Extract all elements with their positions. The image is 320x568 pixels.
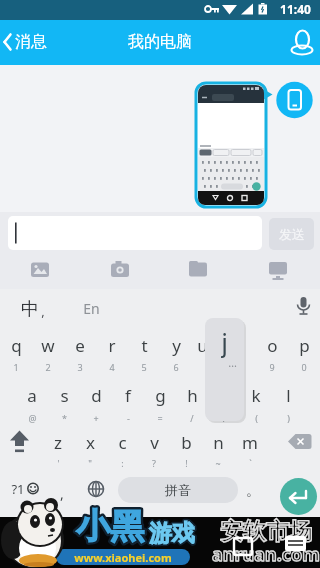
staticText: 中 [21,298,39,321]
staticText: k [251,384,261,407]
staticText: En [83,299,100,318]
staticText: 我的电脑 [128,32,192,52]
staticText: 消息 [15,32,47,52]
staticText: j [221,324,228,358]
button[interactable] [290,292,318,320]
button[interactable] [284,24,320,62]
button[interactable] [280,478,317,515]
staticText: , [60,484,64,502]
staticText: 6 [173,361,179,373]
staticText: - [127,412,130,424]
staticText: 5 [141,361,147,373]
staticText: ? [222,412,226,424]
staticText: h [187,384,198,407]
staticText: 游戏 [149,519,195,548]
staticText: 发送 [279,226,305,242]
staticText: 1 [13,361,19,373]
staticText: 3 [77,361,83,373]
staticText: 拼音 [165,482,191,498]
staticText: 11:40 [280,1,311,17]
staticText: = [157,412,163,424]
staticText: 小黑 [76,505,144,548]
button[interactable]: ?1 [6,480,30,498]
staticText: e [75,334,85,357]
button[interactable]: , [52,484,72,502]
button[interactable]: 发送 [269,218,314,250]
staticText: ?1 [11,480,25,498]
button[interactable] [254,256,302,288]
staticText: + [93,412,99,424]
staticText: : [121,457,124,469]
button[interactable]: 拼音 [118,477,238,503]
button[interactable] [96,256,144,288]
staticText: 游戏 [149,519,195,548]
staticText: w [41,334,55,357]
staticText: , [41,302,45,318]
button[interactable] [284,426,318,458]
staticText: m [242,431,258,454]
staticText: 4 [109,361,115,373]
staticText: * [62,412,67,424]
staticText: a [27,384,37,407]
button[interactable] [16,256,64,288]
staticText: ~ [215,457,221,469]
staticText: ` [249,457,252,469]
staticText: u [197,334,208,357]
button[interactable]: En [78,298,104,318]
staticText: ( [255,412,258,424]
button[interactable] [174,256,222,288]
staticText: anruan.com [212,542,320,566]
staticText: z [54,431,62,454]
staticText: s [60,384,69,407]
button[interactable] [8,216,262,250]
staticText: d [91,384,102,407]
staticText: n [213,431,224,454]
button[interactable] [82,476,110,504]
button[interactable]: 中 [18,296,42,322]
staticText: o [267,334,278,357]
staticText: 2 [45,361,51,373]
staticText: l [286,384,291,407]
staticText: ? [152,457,156,469]
staticText: b [181,431,192,454]
staticText: p [299,334,310,357]
staticText: 小黑 [76,505,144,548]
staticText: 安软市场 [220,517,312,545]
staticText: www.xiaohei.com [74,550,172,565]
staticText: ) [287,412,290,424]
staticText: q [11,334,22,357]
staticText: " [88,457,92,469]
staticText: r [108,334,116,357]
staticText: @ [28,412,37,424]
staticText: g [155,384,166,407]
staticText: f [125,384,131,407]
button[interactable] [0,22,64,64]
staticText: ' [57,457,60,469]
staticText: 0 [301,361,307,373]
staticText: 9 [269,361,275,373]
staticText: t [141,334,148,357]
staticText: ! [185,457,188,469]
staticText: x [86,431,95,454]
button[interactable]: 。 [243,482,263,500]
staticText: … [228,355,237,369]
button[interactable] [2,426,36,458]
staticText: y [172,334,181,357]
staticText: / [190,412,194,424]
staticText: 。 [246,482,260,500]
staticText: c [118,431,127,454]
staticText: v [150,431,159,454]
